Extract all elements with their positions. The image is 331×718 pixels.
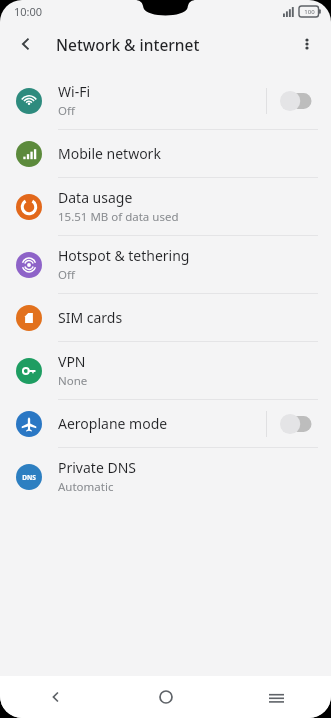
button[interactable]: Toggle — [279, 413, 317, 435]
staticText: VPN — [58, 352, 86, 371]
staticText: Hotspot & tethering — [58, 246, 190, 265]
staticText: Private DNS — [58, 458, 136, 477]
button[interactable]: Back — [0, 676, 111, 718]
staticText: DNS — [22, 473, 36, 482]
button[interactable]: Data usage — [0, 178, 331, 235]
staticText: 10:00 — [14, 4, 43, 19]
staticText: None — [58, 373, 88, 389]
staticText: 100 — [304, 8, 315, 16]
button[interactable]: Back — [6, 24, 46, 64]
button[interactable]: Recent apps — [221, 676, 331, 718]
staticText: Aeroplane mode — [58, 414, 168, 433]
staticText: Network & internet — [56, 34, 200, 55]
staticText: Data usage — [58, 188, 133, 207]
button[interactable]: Mobile network — [0, 130, 331, 177]
staticText: 15.51 MB of data used — [58, 209, 179, 225]
button[interactable]: Wi-Fi — [0, 72, 331, 129]
button[interactable]: SIM cards — [0, 294, 331, 341]
button[interactable]: Hotspot & tethering — [0, 236, 331, 293]
button[interactable]: Home — [111, 676, 221, 718]
button[interactable]: More options — [287, 24, 327, 64]
staticText: Wi-Fi — [58, 82, 91, 101]
button[interactable]: Aeroplane mode — [0, 400, 331, 447]
staticText: Off — [58, 103, 75, 119]
staticText: SIM cards — [58, 308, 123, 327]
staticText: Mobile network — [58, 144, 161, 163]
button[interactable]: DNS — [0, 448, 331, 505]
button[interactable]: Toggle — [279, 90, 317, 112]
button[interactable]: VPN — [0, 342, 331, 399]
staticText: Off — [58, 267, 75, 283]
staticText: Automatic — [58, 479, 114, 495]
